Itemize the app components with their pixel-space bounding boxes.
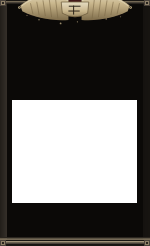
button[interactable]: Emblem [15, 0, 135, 26]
